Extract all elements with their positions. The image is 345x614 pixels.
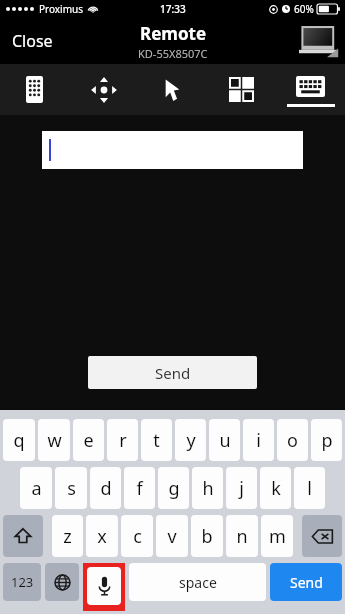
staticText: b: [201, 524, 213, 549]
staticText: h: [202, 476, 214, 501]
button[interactable]: [42, 131, 303, 169]
button[interactable]: i: [243, 419, 274, 461]
button[interactable]: k: [260, 467, 291, 509]
button[interactable]: z: [52, 515, 83, 557]
staticText: Send: [155, 363, 191, 383]
staticText: e: [83, 428, 94, 453]
button[interactable]: m: [261, 515, 293, 557]
button[interactable]: v: [156, 515, 188, 557]
button[interactable]: u: [209, 419, 240, 461]
staticText: q: [13, 428, 25, 453]
staticText: a: [31, 476, 42, 501]
button[interactable]: Pointer: [138, 64, 207, 115]
staticText: Close: [12, 30, 53, 52]
staticText: m: [269, 524, 286, 549]
staticText: v: [167, 524, 177, 549]
button[interactable]: Direction pad: [69, 64, 138, 115]
staticText: 17:33: [160, 2, 186, 16]
staticText: o: [287, 428, 298, 453]
button[interactable]: j: [226, 467, 257, 509]
staticText: u: [219, 428, 231, 453]
staticText: f: [136, 476, 143, 501]
staticText: c: [133, 524, 142, 549]
button[interactable]: n: [226, 515, 258, 557]
staticText: k: [271, 476, 281, 501]
staticText: r: [119, 428, 127, 453]
button[interactable]: 123: [3, 563, 41, 601]
staticText: KD-55X8507C: [138, 46, 208, 61]
button[interactable]: e: [73, 419, 104, 461]
button[interactable]: Close: [8, 24, 57, 58]
staticText: 60%: [294, 2, 314, 16]
button[interactable]: Keyboard: [276, 64, 345, 115]
staticText: space: [179, 573, 217, 592]
staticText: p: [321, 428, 333, 453]
staticText: g: [168, 476, 180, 501]
button[interactable]: Switch keyboard: [45, 563, 79, 601]
staticText: z: [63, 524, 72, 549]
staticText: x: [97, 524, 107, 549]
staticText: d: [100, 476, 112, 501]
button[interactable]: b: [191, 515, 223, 557]
button[interactable]: Apps: [207, 64, 276, 115]
button[interactable]: Send: [88, 356, 257, 389]
staticText: s: [67, 476, 76, 501]
button[interactable]: h: [192, 467, 223, 509]
button[interactable]: g: [158, 467, 189, 509]
button[interactable]: c: [121, 515, 153, 557]
staticText: Remote: [140, 22, 207, 45]
button[interactable]: p: [311, 419, 342, 461]
staticText: t: [153, 428, 160, 453]
button[interactable]: f: [124, 467, 155, 509]
staticText: l: [307, 476, 312, 501]
staticText: j: [239, 476, 244, 501]
button[interactable]: t: [141, 419, 172, 461]
staticText: y: [186, 428, 196, 453]
button[interactable]: l: [294, 467, 325, 509]
button[interactable]: y: [175, 419, 206, 461]
button[interactable]: r: [107, 419, 138, 461]
button[interactable]: a: [20, 467, 52, 509]
button[interactable]: w: [38, 419, 70, 461]
staticText: Send: [290, 573, 323, 592]
button[interactable]: Send: [270, 563, 342, 601]
button[interactable]: space: [129, 563, 266, 601]
button[interactable]: Shift: [3, 515, 43, 557]
button[interactable]: x: [86, 515, 118, 557]
staticText: n: [236, 524, 248, 549]
staticText: Proximus: [39, 2, 84, 16]
button[interactable]: Connected TV: [297, 21, 341, 61]
button[interactable]: s: [55, 467, 87, 509]
button[interactable]: Backspace: [302, 515, 342, 557]
button[interactable]: d: [90, 467, 121, 509]
button[interactable]: o: [277, 419, 308, 461]
staticText: i: [256, 428, 261, 453]
button[interactable]: Number pad: [0, 64, 69, 115]
staticText: 123: [11, 573, 34, 591]
staticText: w: [47, 428, 62, 453]
button[interactable]: q: [3, 419, 35, 461]
button[interactable]: Dictate: [83, 563, 125, 611]
